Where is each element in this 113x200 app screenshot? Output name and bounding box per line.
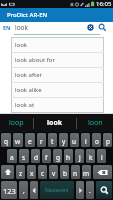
staticText: look [47, 118, 63, 128]
staticText: r [40, 137, 43, 146]
staticText: " [20, 165, 22, 170]
button[interactable]: 9 [92, 133, 101, 147]
staticText: 7 [73, 133, 76, 138]
staticText: / [86, 165, 88, 170]
staticText: 3 [29, 133, 32, 138]
button[interactable]: ' [27, 165, 36, 179]
staticText: . [89, 186, 91, 195]
staticText: 1 [5, 133, 8, 138]
staticText: k [89, 153, 93, 162]
button[interactable]: 4 [37, 133, 46, 147]
button[interactable]: % [42, 149, 51, 163]
staticText: 9 [95, 133, 98, 138]
button[interactable]: look after [12, 68, 103, 82]
staticText: b [63, 169, 67, 178]
staticText: loon [88, 118, 103, 128]
button[interactable]: loon [77, 114, 113, 132]
button[interactable]: look alike [12, 83, 103, 97]
staticText: § [8, 181, 11, 186]
staticText: ' [31, 165, 32, 170]
staticText: d [34, 153, 38, 162]
staticText: n [73, 169, 78, 178]
button[interactable]: Search [96, 181, 112, 199]
button[interactable]: Shift [1, 165, 14, 179]
staticText: c [41, 169, 45, 178]
staticText: loop [9, 118, 24, 128]
staticText: z [19, 169, 23, 178]
staticText: look alike [15, 86, 42, 94]
staticText: 16:05 [96, 0, 112, 8]
button[interactable]: 5 [48, 133, 57, 147]
staticText: Nastavení [45, 187, 69, 194]
button[interactable]: Backspace [93, 165, 112, 179]
button[interactable]: § [1, 181, 17, 199]
button[interactable]: 3 [25, 133, 35, 147]
button[interactable]: loop [0, 114, 33, 132]
button[interactable]: @ [7, 149, 17, 163]
staticText: y [62, 137, 66, 146]
button[interactable]: look at [12, 98, 103, 112]
button[interactable]: ; [49, 165, 58, 179]
button[interactable]: " [16, 165, 25, 179]
button[interactable]: look [12, 38, 103, 52]
staticText: 123 [3, 186, 16, 196]
staticText: g [56, 153, 60, 162]
button[interactable]: . [86, 181, 94, 199]
staticText: & [56, 149, 59, 154]
button[interactable]: EN [0, 22, 13, 36]
button[interactable]: 7 [70, 133, 79, 147]
button[interactable]: ( [97, 149, 106, 163]
staticText: 6 [62, 133, 65, 138]
staticText: j [79, 153, 81, 162]
staticText: 8 [84, 133, 87, 138]
staticText: : [42, 165, 44, 170]
button[interactable]: 0 [103, 133, 112, 147]
staticText: look about for [15, 56, 55, 64]
button[interactable]: look about for [12, 53, 103, 67]
button[interactable]: 1 [1, 133, 11, 147]
staticText: look after [15, 71, 43, 79]
staticText: * [67, 149, 70, 154]
button[interactable]: Voice input [30, 181, 38, 199]
staticText: @ [10, 149, 14, 154]
button[interactable]: Search [96, 22, 109, 36]
button[interactable]: ? [71, 165, 80, 179]
staticText: ProDict AR-EN [7, 11, 48, 19]
button[interactable]: 2 [13, 133, 23, 147]
staticText: q [4, 137, 8, 146]
staticText: l [101, 153, 103, 162]
staticText: s [22, 153, 26, 162]
staticText: 0 [106, 133, 109, 138]
staticText: u [72, 137, 77, 146]
staticText: 4 [40, 133, 43, 138]
staticText: ? [75, 165, 77, 170]
staticText: e [28, 137, 32, 146]
staticText: % [45, 149, 49, 154]
staticText: x [30, 169, 34, 178]
button[interactable]: look [34, 114, 76, 132]
button[interactable]: - [75, 149, 84, 163]
button[interactable]: $ [31, 149, 40, 163]
button[interactable]: ! [60, 165, 69, 179]
button[interactable]: + [86, 149, 95, 163]
button[interactable]: Space [40, 181, 74, 199]
button[interactable]: , [19, 181, 28, 199]
button[interactable]: 6 [59, 133, 68, 147]
staticText: # [23, 149, 26, 154]
button[interactable]: * [64, 149, 73, 163]
button[interactable]: 8 [81, 133, 90, 147]
button[interactable]: / [82, 165, 91, 179]
staticText: look at [15, 101, 35, 109]
staticText: ; [53, 165, 55, 170]
button[interactable]: # [19, 149, 29, 163]
staticText: ! [64, 165, 66, 170]
staticText: look [15, 23, 29, 32]
button[interactable]: : [38, 165, 47, 179]
staticText: m [83, 169, 90, 178]
staticText: p [106, 137, 110, 146]
staticText: h [66, 153, 71, 162]
staticText: t [51, 137, 54, 146]
button[interactable]: & [53, 149, 62, 163]
button[interactable]: Clear text [84, 22, 96, 36]
button[interactable]: Next [76, 181, 84, 199]
